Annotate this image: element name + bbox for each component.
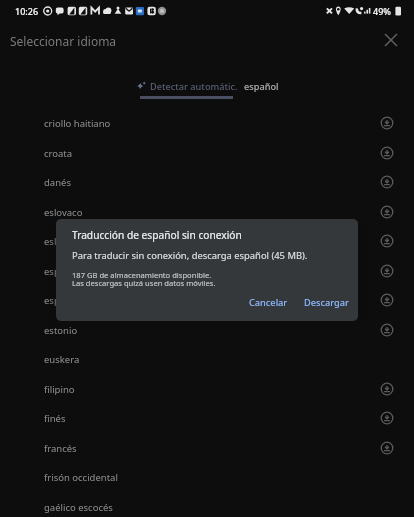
button[interactable]: esloveno <box>0 226 414 256</box>
staticText: filipino <box>44 383 388 396</box>
button[interactable]: Descargar esperanto <box>374 287 400 313</box>
button[interactable]: Descargar francés <box>374 435 400 461</box>
staticText: español <box>244 80 279 93</box>
button[interactable]: criollo haitiano <box>0 108 414 138</box>
button[interactable]: Descargar esloveno <box>374 228 400 254</box>
button[interactable]: Descargar estonio <box>374 317 400 343</box>
button[interactable]: Descargar filipino <box>374 376 400 402</box>
button[interactable]: Descargar criollo haitiano <box>374 110 400 136</box>
button[interactable]: esperanto <box>0 285 414 315</box>
button[interactable]: estonio <box>0 315 414 345</box>
staticText: esperanto <box>44 294 388 307</box>
staticText: Descargar <box>304 296 349 309</box>
button[interactable]: Cancelar <box>241 292 296 313</box>
staticText: croata <box>44 147 388 160</box>
staticText: finés <box>44 412 388 425</box>
button[interactable]: croata <box>0 138 414 168</box>
staticText: eslovaco <box>44 206 388 219</box>
button[interactable]: gaélico escocés <box>0 492 414 517</box>
staticText: Traducción de español sin conexión <box>72 228 242 242</box>
button[interactable]: Detectar automátic. <box>137 80 238 93</box>
button[interactable]: euskera <box>0 344 414 374</box>
button[interactable]: español <box>244 80 279 93</box>
staticText: frisón occidental <box>44 471 414 484</box>
button[interactable]: Descargar español <box>374 258 400 284</box>
button[interactable]: frisón occidental <box>0 462 414 492</box>
button[interactable]: Descargar danés <box>374 169 400 195</box>
staticText: Cancelar <box>249 296 288 309</box>
staticText: 10:26 <box>15 5 39 17</box>
staticText: español <box>44 265 388 278</box>
button[interactable]: eslovaco <box>0 197 414 227</box>
staticText: euskera <box>44 353 414 366</box>
button[interactable]: Descargar eslovaco <box>374 199 400 225</box>
button[interactable]: Descargar <box>296 292 357 313</box>
staticText: 49% <box>373 5 391 17</box>
button[interactable]: finés <box>0 403 414 433</box>
staticText: Detectar automátic. <box>150 80 238 93</box>
staticText: gaélico escocés <box>44 501 414 514</box>
button[interactable]: filipino <box>0 374 414 404</box>
button[interactable]: Descargar croata <box>374 140 400 166</box>
button[interactable]: Descargar finés <box>374 405 400 431</box>
button[interactable]: español <box>0 256 414 286</box>
staticText: criollo haitiano <box>44 117 388 130</box>
button[interactable]: danés <box>0 167 414 197</box>
staticText: Para traducir sin conexión, descarga esp… <box>72 249 308 262</box>
staticText: estonio <box>44 324 388 337</box>
button[interactable]: Cerrar <box>379 28 403 52</box>
staticText: esloveno <box>44 235 388 248</box>
staticText: Seleccionar idioma <box>10 33 117 49</box>
staticText: danés <box>44 176 388 189</box>
staticText: 187 GB de almacenamiento disponible. Las… <box>72 270 216 288</box>
button[interactable]: francés <box>0 433 414 463</box>
staticText: francés <box>44 442 388 455</box>
